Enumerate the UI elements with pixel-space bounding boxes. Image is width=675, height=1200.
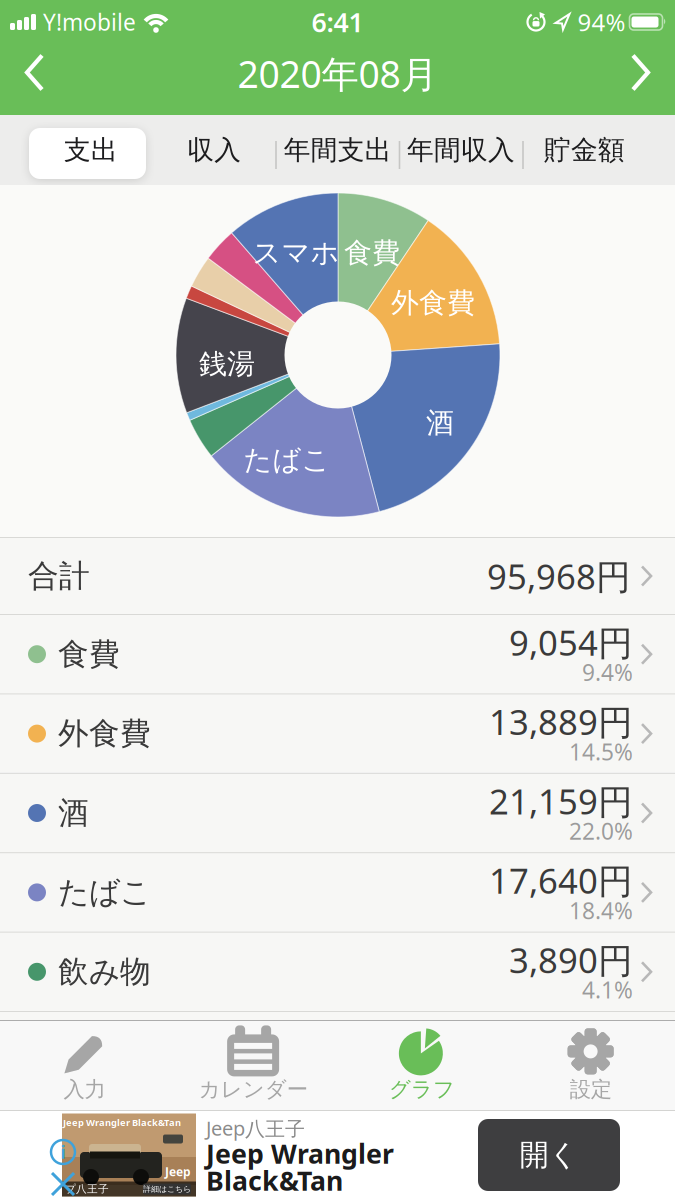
button[interactable]: Previous month [0,53,45,91]
button[interactable]: グラフ [337,1021,506,1109]
staticText: Jeep [165,1163,191,1179]
staticText: 9.4% [582,657,633,687]
staticText: 貯金額 [544,134,625,166]
button[interactable]: 飲み物 [0,932,675,1011]
staticText: 飲み物 [58,953,151,991]
staticText: 支出 [64,134,118,166]
button[interactable]: 年間収入 [399,124,523,175]
staticText: グラフ [389,1076,455,1103]
staticText: 合計 [28,557,90,595]
button[interactable]: Jeep Wrangler Black&Tan [0,1110,675,1200]
button[interactable]: 入力 [0,1021,169,1109]
staticText: 4.1% [582,975,633,1005]
staticText: スマホ [252,236,339,270]
button[interactable]: 外食費 [0,693,675,773]
staticText: 収入 [187,134,241,166]
staticText: 17,640円 [489,857,633,903]
staticText: 外食費 [391,286,475,320]
staticText: 開く [519,1137,578,1173]
staticText: Jeep八王子 [206,1115,305,1141]
staticText: プ八王子 [65,1182,109,1195]
button[interactable]: Close ad [49,1170,77,1198]
staticText: i [60,1140,65,1163]
staticText: 6:41 [311,4,363,40]
staticText: 年間支出 [284,134,392,166]
button[interactable]: 年間支出 [276,124,399,175]
staticText: 酒 [58,794,89,832]
staticText: 13,889円 [489,699,633,745]
staticText: 18.4% [569,895,633,925]
button[interactable]: 合計 [0,537,675,614]
staticText: 22.0% [569,816,633,846]
staticText: 14.5% [569,736,633,767]
button[interactable]: Next month [630,53,675,91]
staticText: 21,159円 [489,778,633,824]
staticText: 外食費 [58,715,151,752]
staticText: 食費 [58,635,120,673]
staticText: Black&Tan [206,1163,343,1198]
button[interactable]: 収入 [153,124,276,175]
button[interactable]: カレンダー [169,1021,338,1109]
button[interactable]: 食費 [0,614,675,693]
staticText: たばこ [58,874,151,911]
staticText: 銭湯 [199,347,255,381]
staticText: 95,968円 [487,553,631,599]
button[interactable]: 設定 [506,1021,675,1109]
button[interactable]: 貯金額 [523,124,646,175]
button[interactable]: About this ad [49,1138,77,1166]
staticText: 入力 [63,1076,105,1103]
staticText: 酒 [426,406,454,440]
staticText: 食費 [344,236,400,270]
staticText: 詳細はこちら [143,1184,191,1194]
staticText: Jeep Wrangler Black&Tan [63,1116,181,1129]
staticText: 94% [577,6,625,38]
staticText: Y!mobile [43,7,136,37]
staticText: 2020年08月 [237,49,437,98]
button[interactable]: 支出 [29,124,153,175]
staticText: たばこ [243,443,330,477]
staticText: 設定 [570,1076,612,1103]
staticText: 9,054円 [509,619,633,665]
staticText: カレンダー [199,1076,308,1103]
button[interactable]: 酒 [0,773,675,852]
button[interactable]: 開く [478,1119,620,1191]
button[interactable]: たばこ [0,852,675,932]
staticText: 3,890円 [509,937,633,983]
staticText: 年間収入 [407,134,515,166]
staticText: Jeep Wrangler [206,1136,394,1171]
